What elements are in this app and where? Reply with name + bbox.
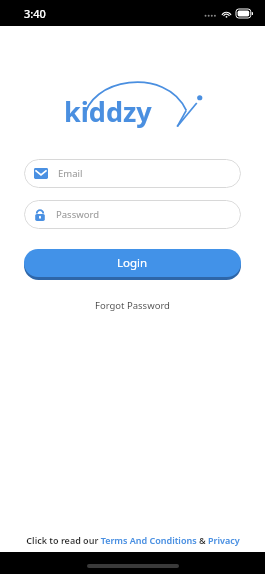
- staticText: kiddzy: [64, 93, 152, 130]
- button[interactable]: Email: [24, 159, 241, 188]
- other: Password: [34, 208, 46, 222]
- button[interactable]: Password: [24, 200, 241, 229]
- staticText: Email: [58, 167, 83, 180]
- button[interactable]: Forgot Password: [89, 296, 176, 315]
- button[interactable]: Click to read our Terms And Conditions &…: [20, 532, 246, 548]
- staticText: 3:40: [24, 6, 46, 21]
- other: Email: [34, 168, 48, 179]
- staticText: Click to read our Terms And Conditions &…: [26, 534, 240, 546]
- staticText: Login: [117, 255, 148, 271]
- staticText: Forgot Password: [95, 299, 170, 312]
- staticText: Password: [56, 208, 99, 221]
- button[interactable]: Login: [24, 249, 241, 277]
